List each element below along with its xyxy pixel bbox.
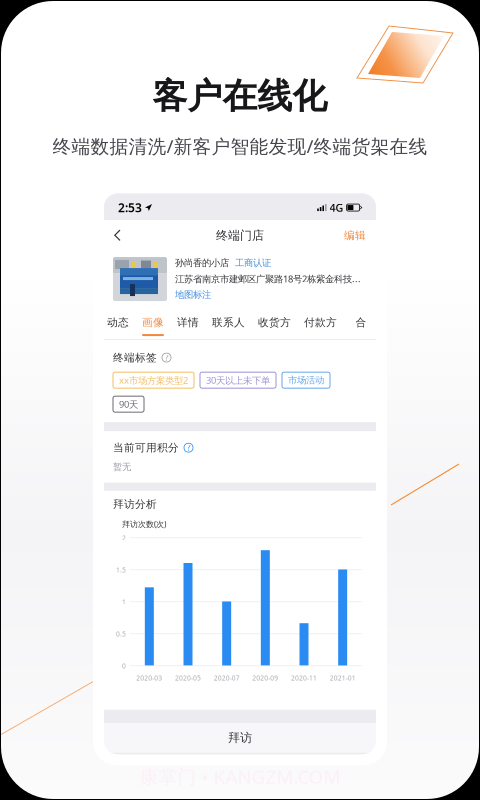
staticText: 2020-07	[214, 673, 240, 682]
staticText: 终端门店	[216, 228, 264, 243]
button[interactable]: 动态	[107, 310, 129, 339]
staticText: 2:53	[118, 200, 142, 215]
staticText: 客户在线化	[152, 75, 327, 118]
button[interactable]: 合	[350, 310, 372, 339]
staticText: 收货方	[258, 316, 291, 329]
staticText: 付款方	[304, 316, 337, 329]
staticText: 0	[122, 661, 126, 670]
button[interactable]: 画像	[142, 310, 164, 339]
staticText: 动态	[107, 316, 129, 329]
staticText: 2020-03	[136, 673, 162, 682]
staticText: 工商认证	[235, 257, 271, 268]
staticText: 30天以上未下单	[206, 374, 270, 386]
button[interactable]: 市场活动	[282, 372, 330, 388]
staticText: 地图标注	[175, 289, 211, 300]
button[interactable]: Back	[114, 219, 142, 251]
staticText: 1.5	[116, 565, 126, 574]
staticText: 2	[122, 533, 126, 542]
button[interactable]: 编辑	[338, 219, 366, 251]
staticText: 孙尚香的小店	[175, 257, 229, 268]
staticText: 4G	[330, 200, 344, 215]
staticText: xx市场方案类型2	[119, 374, 188, 386]
staticText: 画像	[142, 316, 164, 329]
staticText: 终端标签	[113, 351, 157, 364]
staticText: 联系人	[212, 316, 245, 329]
staticText: 90天	[119, 398, 138, 410]
staticText: 拜访	[228, 730, 252, 745]
staticText: 0.5	[116, 629, 126, 638]
staticText: 合	[355, 316, 366, 329]
button[interactable]: 30天以上未下单	[200, 372, 276, 388]
button[interactable]: 90天	[113, 396, 144, 412]
staticText: 2020-09	[252, 673, 278, 682]
button[interactable]: xx市场方案类型2	[113, 372, 194, 388]
staticText: 编辑	[344, 229, 366, 242]
staticText: 江苏省南京市建邺区广聚路18号2栋紫金科技创…	[175, 272, 364, 285]
staticText: 拜访次数(次)	[122, 519, 166, 529]
staticText: 终端数据清洗/新客户智能发现/终端货架在线	[52, 134, 427, 158]
staticText: 1	[122, 597, 126, 606]
button[interactable]: 拜访	[104, 723, 376, 753]
staticText: 2020-11	[291, 673, 317, 682]
staticText: 当前可用积分	[113, 441, 179, 454]
button[interactable]: 详情	[177, 310, 199, 339]
staticText: 康掌门 • KANGZM.COM	[139, 764, 340, 789]
staticText: 拜访分析	[113, 498, 157, 511]
staticText: 市场活动	[288, 374, 324, 386]
staticText: ?	[187, 442, 190, 453]
staticText: ?	[165, 352, 168, 363]
staticText: 详情	[177, 316, 199, 329]
staticText: 2021-01	[330, 673, 356, 682]
button[interactable]: 收货方	[258, 310, 291, 339]
button[interactable]: 联系人	[212, 310, 245, 339]
staticText: 暂无	[113, 461, 131, 473]
button[interactable]: 付款方	[304, 310, 337, 339]
staticText: 2020-05	[175, 673, 201, 682]
